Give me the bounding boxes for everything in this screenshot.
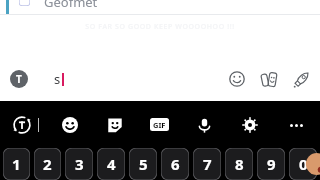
button[interactable]: s bbox=[54, 65, 64, 93]
button[interactable]: More options bbox=[282, 111, 310, 139]
button[interactable]: 2 bbox=[34, 148, 61, 180]
button[interactable]: Insert emoji bbox=[224, 66, 250, 92]
button[interactable]: 7 bbox=[193, 148, 221, 180]
staticText: 8 bbox=[235, 154, 244, 174]
staticText: 6 bbox=[171, 154, 180, 174]
button[interactable]: Emoji bbox=[56, 111, 84, 139]
button[interactable]: Send bbox=[288, 66, 314, 92]
button[interactable]: 3 bbox=[65, 148, 93, 180]
button[interactable]: 9 bbox=[257, 148, 285, 180]
button[interactable]: Google Translate bbox=[8, 111, 36, 139]
button[interactable]: 5 bbox=[129, 148, 157, 180]
staticText: s bbox=[54, 70, 61, 88]
button[interactable]: Settings bbox=[236, 111, 264, 139]
staticText: 1 bbox=[12, 154, 21, 174]
button[interactable]: Stickers bbox=[101, 111, 129, 139]
staticText: 9 bbox=[267, 154, 276, 174]
staticText: Geofmet bbox=[44, 0, 98, 7]
button[interactable]: Text formatting bbox=[10, 70, 28, 88]
staticText: 0 bbox=[299, 154, 308, 174]
button[interactable]: 1 bbox=[3, 148, 30, 180]
button[interactable]: GIF bbox=[147, 115, 172, 134]
staticText: GIF bbox=[153, 120, 166, 130]
staticText: 2 bbox=[43, 154, 52, 174]
button[interactable]: Voice input bbox=[190, 111, 218, 139]
staticText: T bbox=[16, 72, 22, 86]
button[interactable]: Insert sticker bbox=[256, 66, 282, 92]
staticText: 3 bbox=[75, 154, 84, 174]
button[interactable]: 6 bbox=[161, 148, 189, 180]
button[interactable]: 4 bbox=[97, 148, 125, 180]
button[interactable]: 8 bbox=[225, 148, 253, 180]
staticText: 7 bbox=[203, 154, 212, 174]
staticText: 4 bbox=[107, 154, 116, 174]
staticText: 5 bbox=[139, 154, 148, 174]
button[interactable]: 0 bbox=[289, 148, 317, 180]
